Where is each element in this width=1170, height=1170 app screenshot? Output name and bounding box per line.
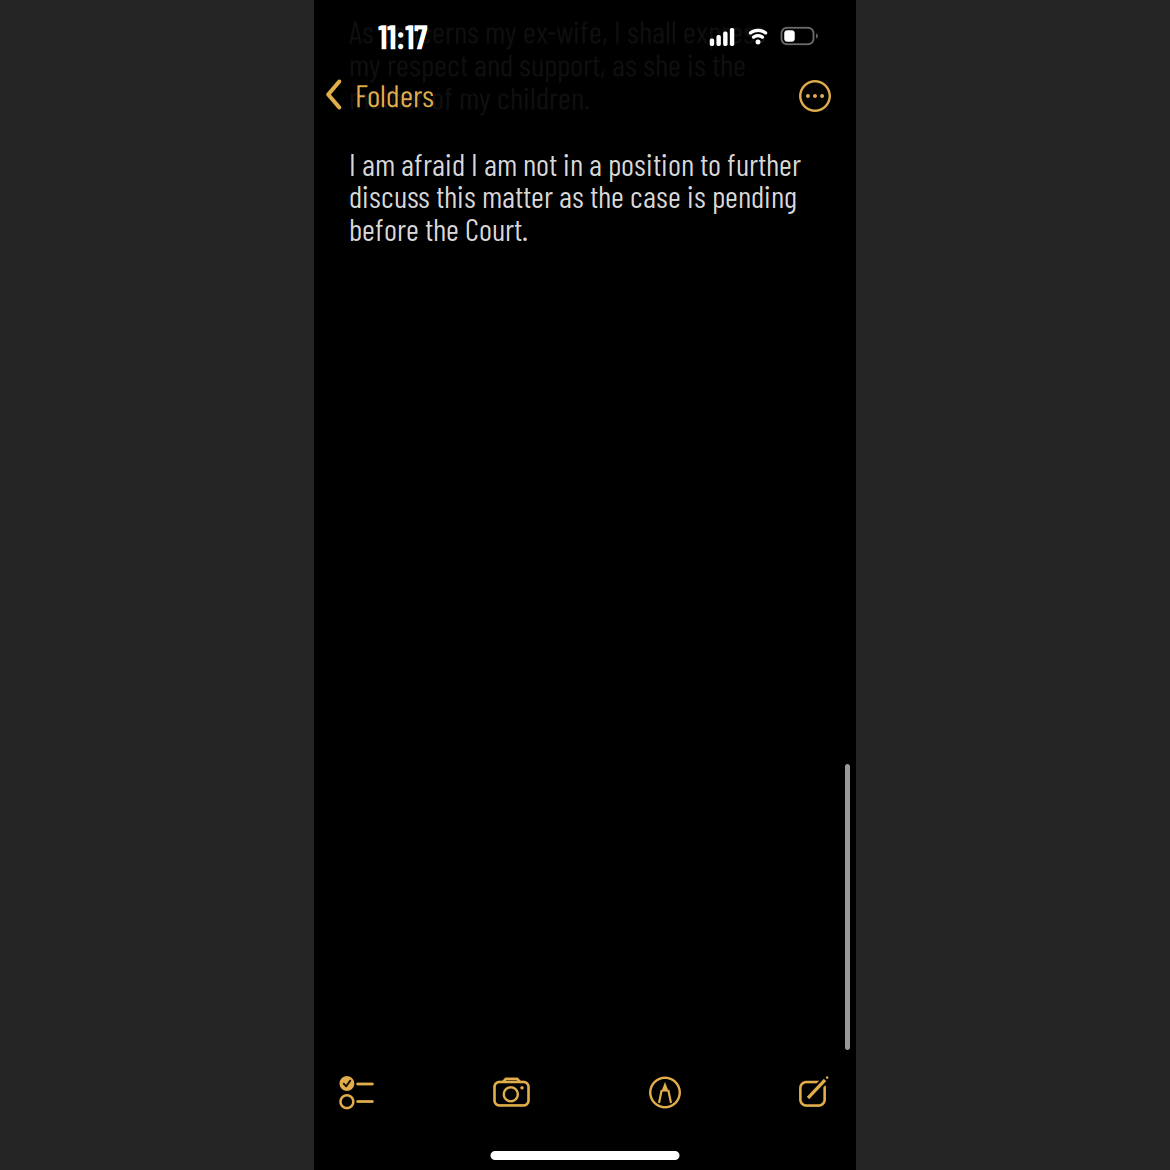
button[interactable]: Markup (650, 1077, 680, 1107)
button[interactable]: Folders (326, 75, 434, 114)
staticText: As concerns my ex-wife, I shall express (349, 12, 766, 50)
button[interactable]: Checklist (339, 1076, 374, 1107)
button[interactable]: Camera (494, 1077, 529, 1106)
staticText: mother of my children. (349, 78, 590, 116)
button[interactable]: More (799, 80, 830, 111)
staticText: Folders (355, 75, 434, 114)
staticText: 11:17 (378, 16, 428, 56)
button[interactable]: New Note (796, 1076, 829, 1107)
staticText: discuss this matter as the case is pendi… (349, 177, 797, 214)
staticText: I am afraid I am not in a position to fu… (349, 145, 801, 182)
staticText: my respect and support, as she is the (349, 45, 746, 83)
staticText: before the Court. (349, 210, 528, 247)
